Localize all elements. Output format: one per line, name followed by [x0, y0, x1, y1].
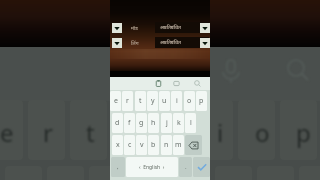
button[interactable]: f [124, 113, 135, 133]
staticText: o [187, 96, 192, 106]
button[interactable]: i [171, 91, 182, 111]
staticText: g [139, 118, 144, 128]
staticText: t [139, 96, 142, 106]
button[interactable]: Dropdown [200, 23, 210, 33]
staticText: j [166, 118, 168, 128]
staticText: y [151, 96, 155, 106]
staticText: t [86, 116, 95, 148]
button[interactable]: Sticker [171, 78, 182, 89]
staticText: ‹ English › [139, 164, 165, 171]
staticText: x [116, 140, 120, 150]
button[interactable]: अप्रतिबंधित [155, 22, 209, 33]
staticText: e [0, 116, 14, 148]
button[interactable]: c [124, 135, 135, 155]
button[interactable]: l [185, 113, 196, 133]
staticText: लिंग [131, 40, 139, 47]
button[interactable]: d [112, 113, 123, 133]
staticText: p [199, 96, 204, 106]
staticText: l [190, 118, 192, 128]
button[interactable]: k [173, 113, 184, 133]
button[interactable]: Dropdown [112, 38, 122, 48]
button[interactable]: Dropdown [200, 38, 210, 48]
staticText: b [151, 140, 156, 150]
button[interactable]: m [173, 135, 184, 155]
staticText: . [185, 163, 187, 171]
staticText: u [162, 96, 167, 106]
staticText: p [296, 116, 311, 148]
button[interactable]: x [112, 135, 123, 155]
staticText: f [128, 118, 131, 128]
staticText: i [217, 116, 224, 148]
staticText: r [126, 96, 129, 106]
button[interactable]: ‹ English › [126, 157, 178, 177]
staticText: c [128, 140, 132, 150]
staticText: i [176, 96, 178, 106]
staticText: k [177, 118, 181, 128]
staticText: अप्रतिबंधित [160, 24, 181, 31]
button[interactable]: Dropdown [112, 23, 122, 33]
staticText: e [114, 96, 118, 106]
button[interactable]: y [147, 91, 158, 111]
staticText: v [140, 140, 144, 150]
staticText: r [43, 116, 53, 148]
staticText: o [255, 116, 270, 148]
staticText: n [164, 140, 169, 150]
button[interactable]: Search [192, 78, 203, 89]
button[interactable]: o [184, 91, 195, 111]
staticText: h [151, 118, 156, 128]
button[interactable]: b [148, 135, 159, 155]
button[interactable]: e [110, 91, 121, 111]
button[interactable]: h [148, 113, 159, 133]
button[interactable]: u [159, 91, 170, 111]
button[interactable]: n [161, 135, 172, 155]
staticText: , [117, 163, 119, 171]
button[interactable]: Backspace [185, 135, 202, 155]
button[interactable]: j [161, 113, 172, 133]
button[interactable]: Clipboard [153, 78, 164, 89]
button[interactable]: t [135, 91, 146, 111]
button[interactable]: r [122, 91, 133, 111]
staticText: मोड [131, 25, 138, 32]
button[interactable]: , [111, 157, 125, 177]
staticText: अप्रतिबंधित [160, 39, 181, 46]
button[interactable]: अप्रतिबंधित [155, 37, 209, 48]
staticText: m [175, 140, 182, 150]
button[interactable]: p [196, 91, 207, 111]
staticText: d [115, 118, 120, 128]
button[interactable]: Enter [193, 157, 210, 177]
button[interactable]: v [136, 135, 147, 155]
button[interactable]: g [136, 113, 147, 133]
